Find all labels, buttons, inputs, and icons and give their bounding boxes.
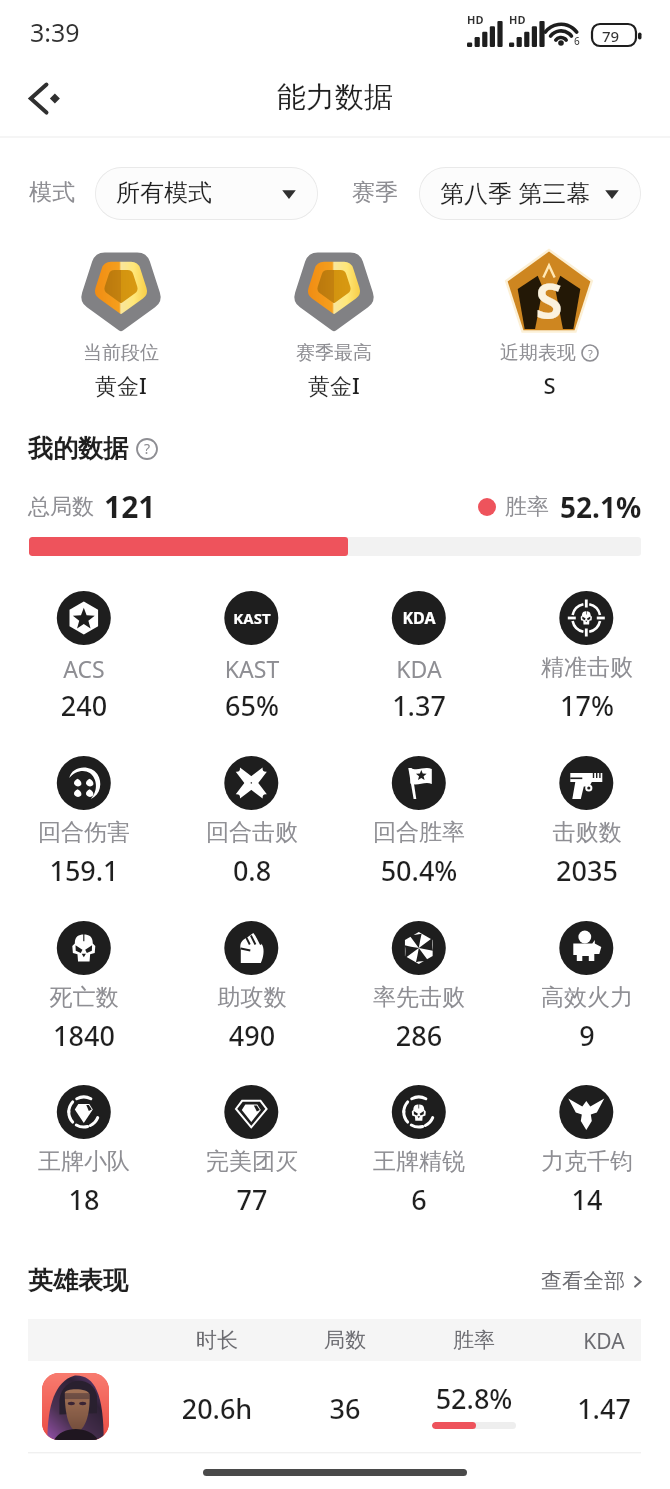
button[interactable]: 精准击败 (503, 577, 670, 722)
staticText: 回合击败 (168, 818, 336, 847)
button[interactable]: 高效火力 (503, 907, 670, 1052)
staticText: KAST (168, 608, 336, 628)
staticText: 回合伤害 (0, 818, 168, 847)
staticText: HD (509, 12, 526, 27)
staticText: 局数 (295, 1327, 395, 1353)
staticText: 240 (0, 687, 168, 724)
staticText: 时长 (167, 1327, 267, 1353)
staticText: 回合胜率 (335, 818, 503, 847)
staticText: S (499, 267, 599, 334)
button[interactable]: KDA (335, 577, 503, 722)
staticText: 近期表现 (500, 341, 576, 365)
staticText: 0.8 (168, 852, 336, 889)
button[interactable]: 助攻数 (168, 907, 336, 1052)
staticText: 490 (168, 1017, 336, 1054)
button[interactable]: 回合伤害 (0, 742, 168, 887)
button[interactable]: 所有模式 (95, 167, 318, 220)
staticText: 1.47 (554, 1390, 654, 1427)
staticText: 击败数 (503, 818, 670, 847)
staticText: 121 (104, 486, 156, 527)
button[interactable]: 完美团灭 (168, 1071, 336, 1216)
staticText: 能力数据 (0, 79, 670, 116)
staticText: 英雄表现 (28, 1265, 128, 1296)
staticText: 完美团灭 (168, 1147, 336, 1176)
staticText: KAST (168, 653, 336, 684)
staticText: 精准击败 (503, 653, 670, 682)
staticText: 当前段位 (83, 341, 159, 365)
staticText: 65% (168, 687, 336, 724)
staticText: 我的数据 (28, 433, 128, 464)
staticText: 286 (335, 1017, 503, 1054)
staticText: 模式 (29, 178, 75, 207)
button[interactable]: 王牌小队 (0, 1071, 168, 1216)
button[interactable]: 率先击败 (335, 907, 503, 1052)
button[interactable]: Current rank badge (21, 240, 221, 335)
staticText: 1840 (0, 1017, 168, 1054)
staticText: 王牌精锐 (335, 1147, 503, 1176)
staticText: 赛季 (352, 178, 398, 207)
staticText: 36 (295, 1390, 395, 1427)
button[interactable]: 死亡数 (0, 907, 168, 1052)
staticText: 总局数 (28, 493, 94, 521)
staticText: KDA (335, 653, 503, 684)
staticText: 王牌小队 (0, 1147, 168, 1176)
staticText: 死亡数 (0, 983, 168, 1012)
button[interactable]: 力克千钧 (503, 1071, 670, 1216)
button[interactable]: 回合胜率 (335, 742, 503, 887)
staticText: 所有模式 (116, 178, 212, 208)
staticText: 助攻数 (168, 983, 336, 1012)
staticText: 3:39 (30, 15, 80, 49)
button[interactable]: Back (14, 70, 70, 126)
staticText: 6 (335, 1181, 503, 1218)
button[interactable]: ACS (0, 577, 168, 722)
staticText: 50.4% (335, 852, 503, 889)
staticText: KDA (554, 1327, 654, 1356)
staticText: ? (588, 346, 593, 361)
staticText: 52.1% (560, 488, 642, 526)
staticText: 第八季 第三幕 (440, 176, 591, 209)
staticText: 力克千钧 (503, 1147, 670, 1176)
staticText: 77 (168, 1181, 336, 1218)
staticText: 6 (574, 34, 580, 48)
staticText: S (543, 370, 556, 400)
staticText: ? (144, 439, 151, 458)
staticText: 率先击败 (335, 983, 503, 1012)
staticText: 胜率 (424, 1327, 524, 1353)
staticText: 159.1 (0, 852, 168, 889)
staticText: 1.37 (335, 687, 503, 724)
staticText: 20.6h (167, 1390, 267, 1427)
staticText: 17% (503, 687, 670, 724)
staticText: 赛季最高 (296, 341, 372, 365)
staticText: 查看全部 (541, 1268, 625, 1294)
button[interactable]: 回合击败 (168, 742, 336, 887)
staticText: 黄金I (308, 370, 360, 400)
button[interactable]: 20.6h (0, 1361, 670, 1453)
staticText: 79 (602, 26, 620, 46)
staticText: 9 (503, 1017, 670, 1054)
staticText: 52.8% (424, 1380, 524, 1417)
button[interactable]: 查看全部 (541, 1268, 646, 1294)
button[interactable]: KAST (168, 577, 336, 722)
button[interactable]: 王牌精锐 (335, 1071, 503, 1216)
staticText: 胜率 (505, 493, 549, 521)
staticText: 14 (503, 1181, 670, 1218)
staticText: HD (467, 12, 484, 27)
staticText: ACS (0, 653, 168, 684)
staticText: KDA (335, 607, 503, 629)
button[interactable]: 第八季 第三幕 (419, 167, 641, 220)
button[interactable]: 击败数 (503, 742, 670, 887)
button[interactable]: 我的数据 (28, 433, 158, 464)
staticText: 高效火力 (503, 983, 670, 1012)
staticText: 18 (0, 1181, 168, 1218)
staticText: 2035 (503, 852, 670, 889)
staticText: 黄金I (95, 370, 147, 400)
